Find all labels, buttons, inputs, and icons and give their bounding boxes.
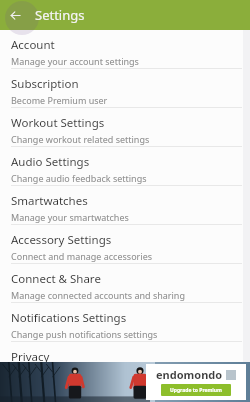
button[interactable]: Smartwatches [0, 186, 250, 224]
staticText: Subscription [11, 76, 79, 92]
staticText: Change what you share with whom [11, 367, 160, 379]
staticText: Change audio feedback settings [11, 172, 147, 184]
staticText: Manage your account settings [11, 55, 139, 67]
button[interactable]: Account [0, 30, 250, 68]
staticText: Manage connected accounts and sharing [11, 289, 185, 301]
button[interactable]: Privacy [0, 342, 250, 380]
button[interactable]: Notifications Settings [0, 303, 250, 341]
staticText: Connect and manage accessories [11, 250, 153, 262]
staticText: Become Premium user [11, 94, 108, 106]
staticText: Settings [35, 6, 85, 24]
staticText: Account [11, 37, 55, 53]
button[interactable]: endomondo [0, 362, 250, 402]
staticText: Accessory Settings [11, 232, 112, 248]
button[interactable]: Back [0, 0, 30, 30]
button[interactable]: Audio Settings [0, 147, 250, 185]
button[interactable]: Workout Settings [0, 108, 250, 146]
staticText: endomondo [156, 367, 223, 382]
staticText: Connect & Share [11, 271, 101, 287]
staticText: Privacy [11, 349, 50, 365]
staticText: Change workout related settings [11, 133, 150, 145]
staticText: Notifications Settings [11, 310, 127, 326]
button[interactable]: Connect & Share [0, 264, 250, 302]
staticText: Smartwatches [11, 193, 88, 209]
staticText: Change push notifications settings [11, 328, 158, 340]
button[interactable]: Upgrade to Premium [161, 384, 231, 396]
staticText: Upgrade to Premium [170, 387, 222, 394]
button[interactable]: Subscription [0, 69, 250, 107]
staticText: Manage your smartwatches [11, 211, 129, 223]
button[interactable]: Accessory Settings [0, 225, 250, 263]
staticText: Audio Settings [11, 154, 90, 170]
staticText: Workout Settings [11, 115, 105, 131]
